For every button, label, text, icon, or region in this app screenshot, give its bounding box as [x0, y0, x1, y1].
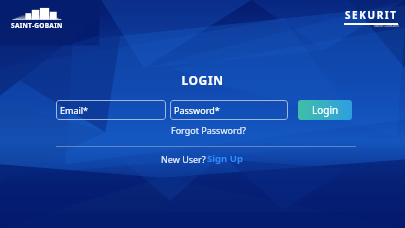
- staticText: Password*: [174, 104, 220, 116]
- staticText: Login: [312, 103, 339, 117]
- button[interactable]: Email*: [56, 100, 166, 120]
- staticText: SEKURIT: [345, 8, 398, 22]
- staticText: Email*: [60, 104, 89, 116]
- other: Saint-Gobain logo: [8, 6, 66, 30]
- button[interactable]: Sign Up: [206, 152, 244, 165]
- staticText: SAINT-GOBAIN: [374, 24, 399, 28]
- staticText: LOGIN: [181, 72, 224, 88]
- staticText: Forgot Password?: [171, 124, 246, 136]
- staticText: Sign Up: [207, 152, 243, 165]
- button[interactable]: Password*: [170, 100, 288, 120]
- other: Sekurit logo: [343, 8, 399, 28]
- staticText: New User?: [161, 153, 206, 165]
- staticText: SAINT-GOBAIN: [11, 21, 63, 30]
- button[interactable]: Login: [298, 100, 352, 120]
- button[interactable]: Forgot Password?: [170, 123, 247, 137]
